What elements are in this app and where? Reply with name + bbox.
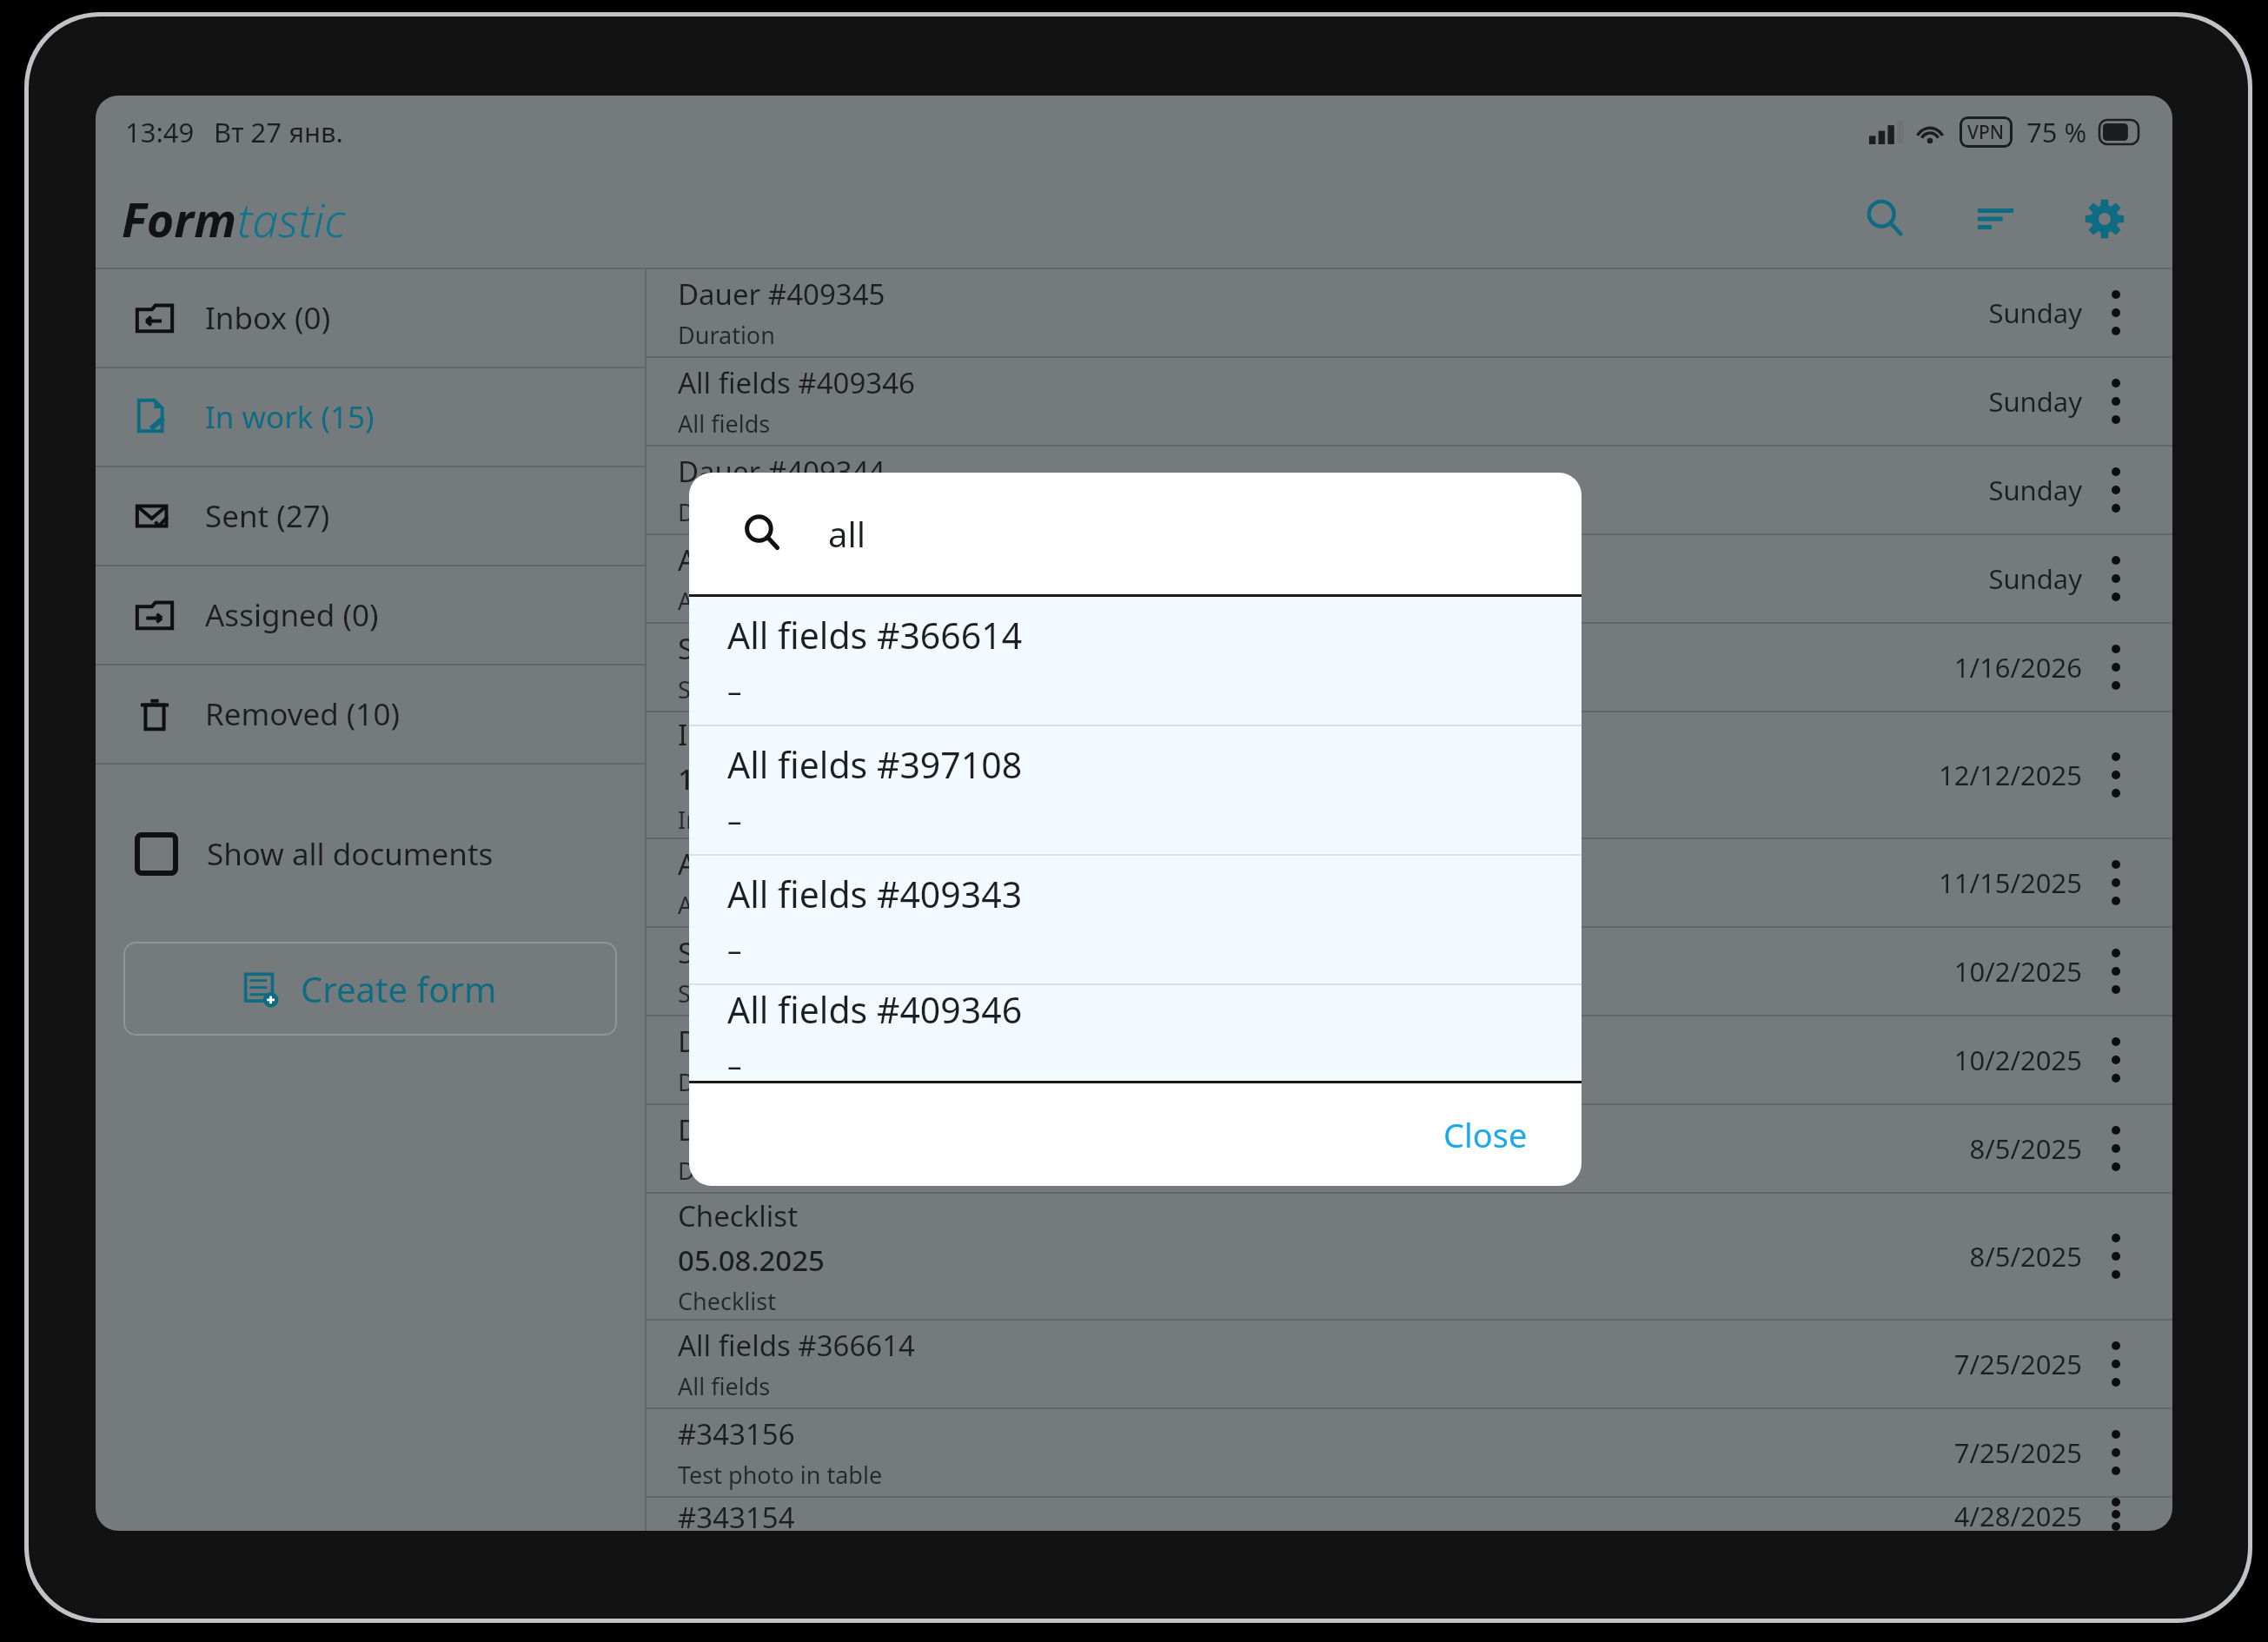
staticText: Signature #409342 bbox=[678, 629, 932, 668]
staticText: Assigned (0) bbox=[205, 594, 379, 636]
staticText: Dauer #366620 bbox=[678, 1022, 885, 1061]
staticText: All fields #409346 bbox=[727, 985, 1023, 1034]
staticText: Create form bbox=[301, 965, 497, 1012]
staticText: 8/5/2025 bbox=[1969, 1238, 2082, 1275]
button[interactable]: All fields #409343 bbox=[647, 535, 2172, 622]
button[interactable]: More options bbox=[2082, 839, 2150, 926]
staticText: Checklist bbox=[678, 1196, 799, 1235]
button[interactable]: Search bbox=[1853, 186, 1919, 252]
staticText: In work (15) bbox=[205, 396, 375, 438]
staticText: All fields bbox=[678, 889, 771, 921]
button[interactable]: All fields #409346 bbox=[647, 358, 2172, 445]
button[interactable]: Assigned (0) bbox=[96, 566, 645, 664]
button[interactable]: More options bbox=[2082, 358, 2150, 445]
staticText: All fields #366614 bbox=[727, 611, 1023, 659]
staticText: Signature bbox=[678, 673, 785, 705]
button[interactable]: More options bbox=[2082, 1105, 2150, 1192]
staticText: Duration bbox=[678, 496, 775, 528]
button[interactable]: Inbox (0) bbox=[96, 269, 645, 367]
button[interactable]: All fields #366614 bbox=[689, 597, 1582, 725]
staticText: VPN bbox=[1967, 120, 2005, 145]
button[interactable]: More options bbox=[2082, 269, 2150, 356]
staticText: All fields bbox=[678, 407, 771, 440]
staticText: Вт 27 янв. bbox=[214, 114, 343, 150]
button[interactable]: In work (15) bbox=[96, 368, 645, 466]
staticText: 7/25/2025 bbox=[1953, 1346, 2082, 1382]
button[interactable]: More options bbox=[2082, 1321, 2150, 1407]
staticText: Signature bbox=[678, 977, 785, 1010]
staticText: 10/2/2025 bbox=[1953, 953, 2082, 990]
button[interactable]: Signature #380001 bbox=[647, 928, 2172, 1015]
staticText: Removed (10) bbox=[205, 693, 400, 735]
button[interactable]: More options bbox=[2082, 447, 2150, 533]
staticText: tastic bbox=[237, 187, 346, 251]
staticText: – bbox=[727, 930, 742, 970]
staticText: 12.12.2025 bbox=[678, 759, 825, 798]
button[interactable]: Checklist bbox=[647, 1194, 2172, 1319]
staticText: – bbox=[727, 672, 742, 711]
button[interactable]: Sent (27) bbox=[96, 467, 645, 565]
staticText: 13:49 bbox=[125, 114, 195, 150]
staticText: All fields #409343 bbox=[678, 540, 915, 579]
staticText: Duration bbox=[678, 1155, 775, 1187]
button[interactable]: Signature #409342 bbox=[647, 624, 2172, 711]
staticText: All fields #366614 bbox=[678, 1326, 915, 1365]
button[interactable]: All fields #397108 bbox=[647, 839, 2172, 926]
button[interactable]: More options bbox=[2082, 1409, 2150, 1496]
button[interactable]: All fields #409346 bbox=[689, 985, 1582, 1081]
staticText: 12/12/2025 bbox=[1939, 757, 2082, 793]
staticText: Sunday bbox=[1988, 383, 2082, 420]
staticText: 7/25/2025 bbox=[1953, 1434, 2082, 1471]
staticText: all bbox=[828, 510, 866, 557]
button[interactable]: All fields #397108 bbox=[689, 726, 1582, 854]
button[interactable]: #343154 bbox=[647, 1498, 2172, 1531]
staticText: 75 % bbox=[2026, 114, 2087, 150]
button[interactable]: Inspection #397108 bbox=[647, 712, 2172, 838]
button[interactable]: Show all documents bbox=[96, 806, 645, 902]
staticText: Signature #380001 bbox=[678, 933, 932, 972]
staticText: Test photo in table bbox=[678, 1459, 883, 1491]
button[interactable]: Close bbox=[1428, 1100, 1543, 1169]
button[interactable]: #343156 bbox=[647, 1409, 2172, 1496]
staticText: #343156 bbox=[678, 1414, 795, 1453]
staticText: Inspection bbox=[678, 804, 794, 836]
staticText: – bbox=[727, 801, 742, 840]
staticText: All fields #397108 bbox=[678, 844, 915, 884]
staticText: Dauer #409344 bbox=[678, 452, 885, 491]
button[interactable]: More options bbox=[2082, 712, 2150, 838]
button[interactable]: Dauer #409344 bbox=[647, 447, 2172, 533]
button[interactable]: Dauer #409345 bbox=[647, 269, 2172, 356]
staticText: Checklist bbox=[678, 1285, 776, 1317]
button[interactable]: More options bbox=[2082, 1194, 2150, 1319]
button[interactable]: More options bbox=[2082, 624, 2150, 711]
button[interactable]: Sort bbox=[1962, 186, 2028, 252]
staticText: Inspection #397108 bbox=[678, 715, 945, 754]
button[interactable]: More options bbox=[2082, 535, 2150, 622]
button[interactable]: Dauer #366620 bbox=[647, 1016, 2172, 1103]
button[interactable]: Create form bbox=[123, 942, 617, 1036]
staticText: Inbox (0) bbox=[205, 297, 331, 339]
button[interactable]: All fields #366614 bbox=[647, 1321, 2172, 1407]
staticText: Close bbox=[1443, 1112, 1528, 1157]
staticText: 10/2/2025 bbox=[1953, 1042, 2082, 1078]
staticText: 1/16/2026 bbox=[1953, 649, 2082, 685]
button[interactable]: More options bbox=[2082, 1498, 2150, 1531]
button[interactable]: More options bbox=[2082, 928, 2150, 1015]
staticText: All fields bbox=[678, 1370, 771, 1402]
button[interactable]: Dauer #366618 bbox=[647, 1105, 2172, 1192]
button[interactable]: Removed (10) bbox=[96, 665, 645, 763]
staticText: Sunday bbox=[1988, 295, 2082, 331]
button[interactable]: Settings bbox=[2072, 186, 2138, 252]
button[interactable]: all bbox=[689, 473, 1582, 594]
staticText: 8/5/2025 bbox=[1969, 1130, 2082, 1167]
staticText: Show all documents bbox=[207, 833, 494, 875]
button[interactable]: More options bbox=[2082, 1016, 2150, 1103]
staticText: All fields bbox=[678, 585, 771, 617]
staticText: All fields #397108 bbox=[727, 740, 1023, 789]
button[interactable]: All fields #409343 bbox=[689, 856, 1582, 983]
staticText: Form bbox=[122, 187, 237, 251]
staticText: – bbox=[727, 1046, 742, 1081]
staticText: Sunday bbox=[1988, 472, 2082, 508]
staticText: 11/15/2025 bbox=[1939, 864, 2082, 901]
staticText: Sunday bbox=[1988, 560, 2082, 597]
